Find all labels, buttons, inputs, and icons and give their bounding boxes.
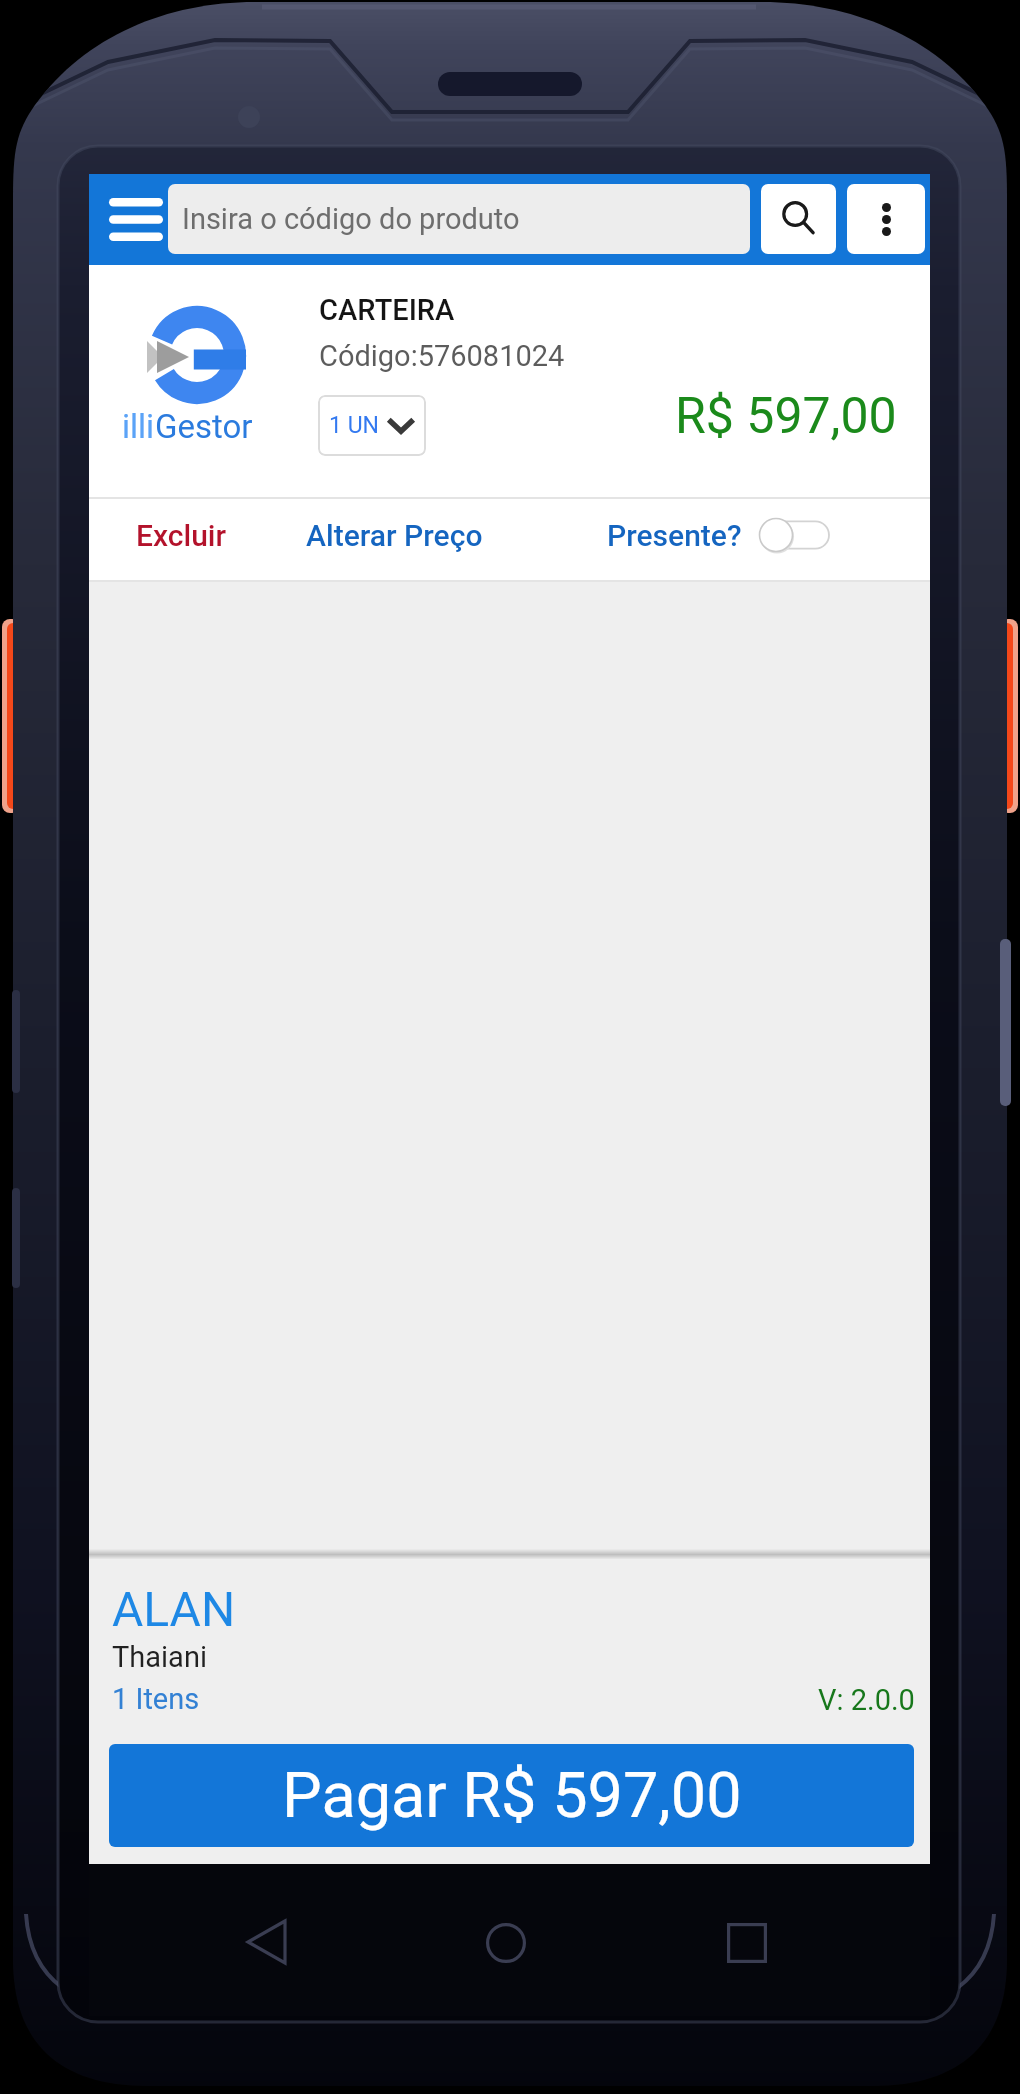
staticText: Thaiani <box>112 1640 207 1674</box>
button[interactable]: Recents <box>713 1909 781 1977</box>
staticText: Alterar Preço <box>306 518 483 553</box>
staticText: Código:576081024 <box>319 339 565 373</box>
staticText: ALAN <box>112 1581 236 1637</box>
staticText: 1 Itens <box>112 1682 200 1716</box>
staticText: Presente? <box>607 518 742 553</box>
staticText: 1 UN <box>329 412 379 439</box>
button[interactable]: Excluir <box>133 499 229 571</box>
button[interactable]: Pagar R$ 597,00 <box>109 1744 914 1847</box>
button[interactable]: Back <box>232 1908 300 1976</box>
button[interactable]: Search <box>761 184 836 254</box>
button[interactable]: Alterar Preço <box>301 499 487 571</box>
button[interactable]: Insira o código do produto <box>168 184 750 254</box>
staticText: R$ 597,00 <box>675 387 897 446</box>
staticText: Excluir <box>136 518 227 553</box>
button[interactable]: Menu <box>99 174 173 265</box>
button[interactable]: Presente? <box>607 499 831 571</box>
staticText: V: 2.0.0 <box>818 1683 915 1717</box>
button[interactable]: More options <box>847 184 925 254</box>
staticText: illi <box>122 407 155 446</box>
button[interactable]: 1 UN <box>318 395 426 456</box>
staticText: CARTEIRA <box>319 293 455 327</box>
button[interactable]: Home <box>472 1909 540 1977</box>
staticText: Insira o código do produto <box>182 202 520 236</box>
staticText: Pagar R$ 597,00 <box>282 1759 742 1833</box>
staticText: Gestor <box>155 407 253 446</box>
